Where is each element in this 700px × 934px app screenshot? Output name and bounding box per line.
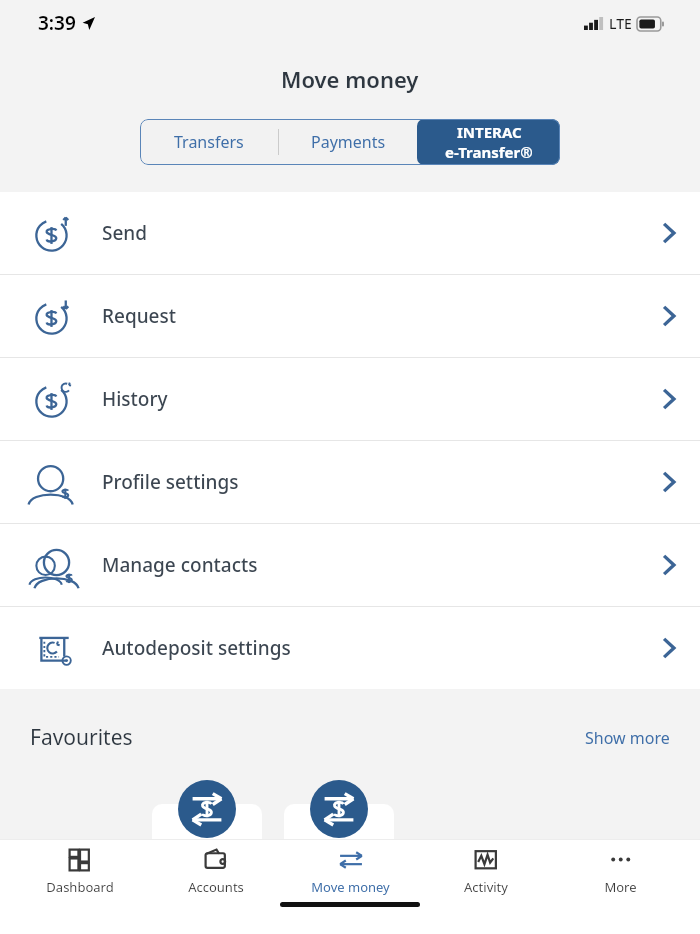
staticText: History [102,386,168,412]
staticText: LTE [609,14,632,33]
staticText: 3:39 [38,10,76,36]
button[interactable]: $1.00 [152,804,262,900]
button[interactable]: History [0,358,700,440]
staticText: INTERAC [457,122,522,142]
button[interactable]: Send [0,192,700,274]
staticText: Autodeposit settings [102,635,291,661]
staticText: Show more [585,727,670,749]
button[interactable]: Show more [585,727,670,749]
button[interactable]: More [553,840,688,902]
staticText: More [604,878,637,896]
staticText: Accounts [188,878,244,896]
staticText: Move money [281,64,419,94]
button[interactable]: Move money [283,840,418,902]
staticText: Send [102,220,148,246]
button[interactable]: INTERAC [417,119,560,165]
button[interactable]: Payments [279,119,417,165]
button[interactable]: $1.00 [284,804,394,900]
button[interactable]: Transfers [140,119,278,165]
button[interactable]: Activity [418,840,553,902]
button[interactable]: Accounts [148,840,283,902]
staticText: Activity [464,878,508,896]
staticText: Dashboard [46,878,114,896]
button[interactable]: Manage contacts [0,524,700,606]
staticText: Move money [311,878,390,896]
staticText: $1.00 [317,871,361,894]
staticText: e-Transfer® [445,142,533,162]
button[interactable]: Request [0,275,700,357]
staticText: Manage contacts [102,552,258,578]
staticText: Profile settings [102,469,239,495]
button[interactable]: Send money favourite [178,780,236,838]
staticText: Payments [311,131,386,153]
button[interactable]: Profile settings [0,441,700,523]
staticText: $1.00 [185,871,229,894]
button[interactable]: Dashboard [12,840,148,902]
staticText: Transfers [174,131,244,153]
button[interactable]: Send money favourite [310,780,368,838]
button[interactable]: Autodeposit settings [0,607,700,689]
staticText: Request [102,303,177,329]
staticText: Favourites [30,723,133,752]
